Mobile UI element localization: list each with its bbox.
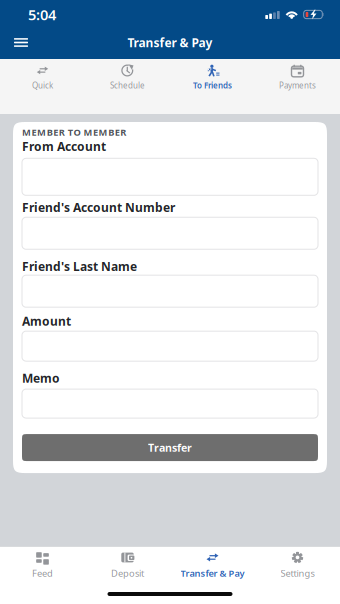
staticText: Settings xyxy=(280,567,314,579)
staticText: Transfer xyxy=(148,440,192,455)
button[interactable]: Transfer & Pay xyxy=(170,547,255,587)
staticText: Friend's Last Name xyxy=(22,258,137,274)
button[interactable]: To Friends xyxy=(170,59,255,114)
staticText: Payments xyxy=(279,80,316,91)
staticText: Quick xyxy=(32,80,53,91)
button[interactable]: Settings xyxy=(255,547,340,587)
button[interactable]: Deposit xyxy=(85,547,170,587)
button[interactable]: Transfer xyxy=(22,434,318,461)
button[interactable]: Quick xyxy=(0,59,85,114)
staticText: Friend's Account Number xyxy=(22,199,175,215)
staticText: To Friends xyxy=(193,80,232,91)
staticText: Transfer & Pay xyxy=(127,34,212,50)
staticText: Feed xyxy=(32,567,53,579)
staticText: Schedule xyxy=(110,80,145,91)
button[interactable]: Menu xyxy=(0,26,42,59)
staticText: Transfer & Pay xyxy=(180,567,244,579)
staticText: From Account xyxy=(22,138,106,154)
staticText: MEMBER TO MEMBER xyxy=(22,126,126,138)
staticText: Deposit xyxy=(111,567,144,579)
button[interactable]: Schedule xyxy=(85,59,170,114)
button[interactable]: Feed xyxy=(0,547,85,587)
staticText: Amount xyxy=(22,313,71,329)
staticText: Memo xyxy=(22,370,60,386)
button[interactable]: Payments xyxy=(255,59,340,114)
staticText: 5:04 xyxy=(28,5,56,24)
